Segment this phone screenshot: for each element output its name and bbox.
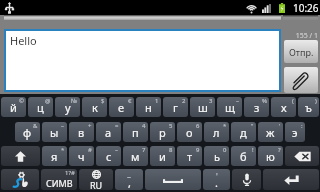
button[interactable]: п bbox=[123, 122, 148, 142]
staticText: % bbox=[262, 97, 267, 105]
staticText: ф bbox=[23, 125, 32, 140]
button[interactable]: а bbox=[96, 122, 121, 142]
staticText: : bbox=[301, 122, 303, 130]
staticText: – bbox=[115, 146, 119, 154]
button[interactable]: к bbox=[82, 97, 107, 117]
button[interactable]: и bbox=[150, 146, 175, 166]
button[interactable]: Shift bbox=[1, 146, 40, 166]
button[interactable]: ц bbox=[28, 97, 53, 117]
staticText: Hello bbox=[10, 33, 37, 48]
staticText: р bbox=[159, 125, 166, 140]
button[interactable]: з bbox=[244, 97, 269, 117]
staticText: г bbox=[173, 100, 178, 115]
button[interactable]: м bbox=[123, 146, 148, 166]
staticText: ! bbox=[252, 146, 254, 154]
staticText: СИМВ bbox=[46, 177, 73, 189]
staticText: 1 bbox=[155, 97, 159, 105]
button[interactable]: щ bbox=[217, 97, 242, 117]
button[interactable]: Handwriting bbox=[1, 169, 39, 190]
staticText: 1?# bbox=[65, 169, 75, 177]
button[interactable]: б bbox=[231, 146, 256, 166]
button[interactable]: , bbox=[115, 169, 143, 190]
staticText: д bbox=[240, 125, 247, 140]
button[interactable]: о bbox=[177, 122, 202, 142]
staticText: = bbox=[115, 122, 119, 130]
staticText: 8 bbox=[169, 146, 173, 154]
button[interactable]: д bbox=[231, 122, 256, 142]
staticText: с bbox=[106, 149, 112, 164]
button[interactable]: Space bbox=[145, 169, 201, 190]
button[interactable]: ж bbox=[258, 122, 283, 142]
staticText: $ bbox=[101, 97, 105, 105]
button[interactable]: р bbox=[150, 122, 175, 142]
button[interactable]: Backspace bbox=[285, 146, 319, 166]
button[interactable]: в bbox=[69, 122, 94, 142]
button[interactable]: т bbox=[177, 146, 202, 166]
button[interactable]: э bbox=[285, 122, 305, 142]
staticText: " bbox=[251, 122, 254, 130]
staticText: @ bbox=[45, 97, 51, 105]
staticText: ' bbox=[216, 171, 218, 182]
staticText: 2 bbox=[182, 97, 186, 105]
staticText: . bbox=[215, 175, 218, 190]
staticText: © bbox=[19, 97, 24, 105]
button[interactable]: г bbox=[163, 97, 188, 117]
staticText: б bbox=[240, 149, 247, 164]
button[interactable]: ъ bbox=[298, 97, 319, 117]
staticText: ( bbox=[292, 97, 294, 105]
staticText: 155 / 1 bbox=[283, 31, 318, 41]
button[interactable]: ш bbox=[190, 97, 215, 117]
button[interactable]: я bbox=[42, 146, 67, 166]
staticText: т bbox=[187, 149, 193, 164]
button[interactable]: л bbox=[204, 122, 229, 142]
staticText: , bbox=[128, 175, 131, 190]
button[interactable]: ь bbox=[204, 146, 229, 166]
staticText: * bbox=[61, 146, 65, 154]
button[interactable]: . bbox=[203, 169, 230, 190]
staticText: RU bbox=[90, 179, 103, 190]
staticText: 10:26 bbox=[293, 1, 319, 15]
staticText: ь bbox=[214, 149, 220, 164]
staticText: ч bbox=[78, 149, 85, 164]
staticText: о bbox=[186, 125, 193, 140]
button[interactable]: е bbox=[109, 97, 134, 117]
staticText: * bbox=[223, 122, 227, 130]
staticText: ш bbox=[198, 100, 208, 115]
staticText: е bbox=[118, 100, 125, 115]
staticText: к bbox=[92, 100, 98, 115]
button[interactable]: й bbox=[1, 97, 26, 117]
staticText: ъ bbox=[305, 100, 312, 115]
button[interactable]: с bbox=[96, 146, 121, 166]
staticText: – bbox=[127, 171, 131, 182]
staticText: я bbox=[51, 149, 58, 164]
button[interactable]: у bbox=[55, 97, 80, 117]
staticText: – bbox=[61, 122, 65, 130]
button[interactable]: Voice input bbox=[232, 169, 261, 190]
button[interactable]: ы bbox=[42, 122, 67, 142]
staticText: 5 bbox=[169, 122, 173, 130]
button[interactable]: х bbox=[271, 97, 296, 117]
staticText: щ bbox=[225, 100, 235, 115]
button[interactable]: СИМВ bbox=[41, 169, 77, 190]
staticText: п bbox=[132, 125, 139, 140]
staticText: 3 bbox=[209, 97, 213, 105]
staticText: у bbox=[65, 100, 71, 115]
button[interactable]: Enter bbox=[263, 169, 319, 190]
staticText: 4 bbox=[142, 122, 146, 130]
button[interactable]: ю bbox=[258, 146, 283, 166]
staticText: & bbox=[33, 122, 38, 130]
staticText: ' bbox=[279, 122, 281, 130]
button[interactable]: Change language bbox=[79, 169, 113, 190]
button[interactable]: Attach bbox=[284, 67, 318, 93]
button[interactable]: ф bbox=[15, 122, 40, 142]
button[interactable]: н bbox=[136, 97, 161, 117]
button[interactable]: Отпр. bbox=[284, 40, 318, 63]
button[interactable]: ч bbox=[69, 146, 94, 166]
button[interactable]: Hello bbox=[6, 31, 279, 90]
staticText: + bbox=[88, 122, 92, 130]
staticText: ж bbox=[266, 125, 275, 140]
staticText: ю bbox=[266, 149, 275, 164]
staticText: н bbox=[145, 100, 152, 115]
staticText: € bbox=[128, 97, 132, 105]
staticText: э bbox=[292, 125, 298, 140]
